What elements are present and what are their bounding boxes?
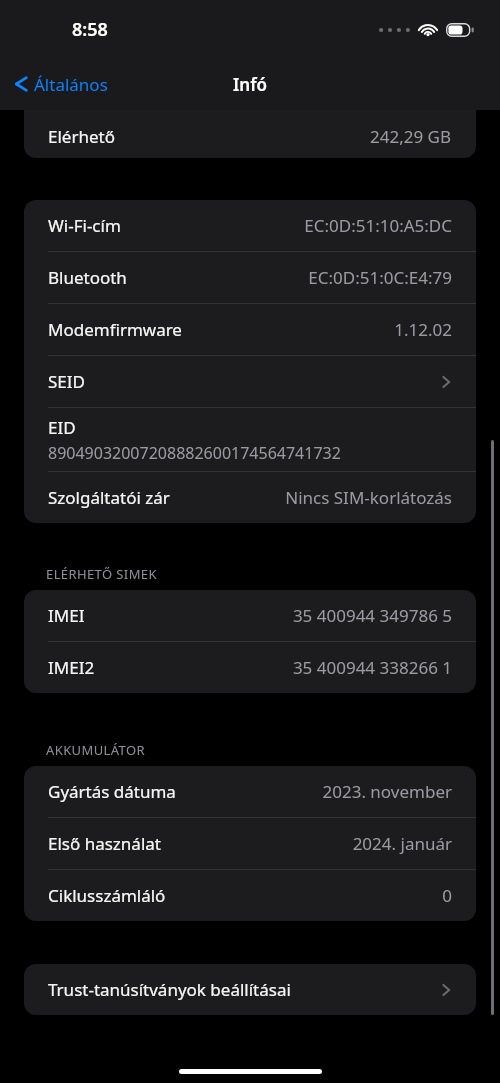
staticText: Nincs SIM-korlátozás	[285, 486, 452, 509]
button[interactable]: Gyártás dátuma	[24, 766, 476, 817]
staticText: 8:58	[72, 17, 108, 42]
staticText: Általános	[34, 73, 108, 96]
button[interactable]: Modemfirmware	[24, 304, 476, 355]
staticText: AKKUMULÁTOR	[46, 741, 500, 759]
staticText: 89049032007208882600174564741732	[48, 442, 341, 464]
staticText: Wi-Fi-cím	[48, 214, 121, 237]
staticText: 1.12.02	[394, 318, 452, 341]
button[interactable]: Általános	[0, 62, 116, 106]
staticText: Első használat	[48, 832, 161, 855]
staticText: Szolgáltatói zár	[48, 486, 170, 509]
staticText: 242,29 GB	[370, 125, 452, 148]
button[interactable]: Első használat	[24, 818, 476, 869]
button[interactable]: Szolgáltatói zár	[24, 472, 476, 523]
button[interactable]: Bluetooth	[24, 252, 476, 303]
staticText: Bluetooth	[48, 266, 127, 289]
button[interactable]: Ciklusszámláló	[24, 870, 476, 921]
staticText: IMEI2	[48, 656, 95, 679]
staticText: 2023. november	[322, 780, 452, 803]
button[interactable]: IMEI	[24, 590, 476, 641]
button[interactable]: EID	[24, 408, 476, 471]
staticText: ELÉRHETŐ SIMEK	[46, 565, 500, 583]
staticText: SEID	[48, 370, 85, 393]
button[interactable]: Elérhető	[24, 110, 476, 158]
staticText: EC:0D:51:0C:E4:79	[308, 266, 452, 289]
button[interactable]: SEID	[24, 356, 476, 407]
staticText: EC:0D:51:10:A5:DC	[304, 214, 452, 237]
button[interactable]: IMEI2	[24, 642, 476, 693]
staticText: Trust-tanúsítványok beállításai	[48, 978, 291, 1001]
button[interactable]: Wi-Fi-cím	[24, 200, 476, 251]
staticText: Ciklusszámláló	[48, 884, 166, 907]
staticText: 2024. január	[352, 832, 452, 855]
staticText: 0	[442, 884, 452, 907]
staticText: IMEI	[48, 604, 85, 627]
staticText: Infó	[233, 73, 267, 96]
staticText: Modemfirmware	[48, 318, 182, 341]
staticText: 35 400944 338266 1	[292, 656, 452, 679]
staticText: Elérhető	[48, 125, 115, 148]
staticText: Gyártás dátuma	[48, 780, 176, 803]
button[interactable]: Trust-tanúsítványok beállításai	[24, 964, 476, 1015]
staticText: EID	[48, 416, 76, 439]
staticText: 35 400944 349786 5	[292, 604, 452, 627]
